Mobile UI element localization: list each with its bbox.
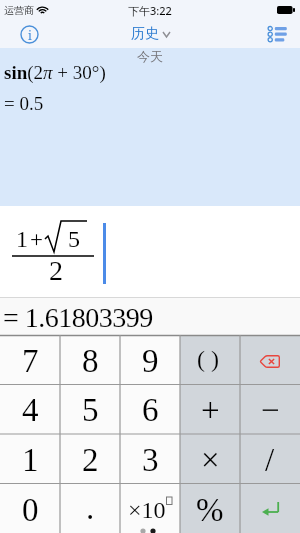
staticText: 5 — [82, 392, 99, 429]
staticText: 1 — [22, 442, 39, 479]
staticText: 运营商 — [4, 4, 34, 17]
staticText: / — [265, 442, 275, 479]
staticText: 2 — [82, 442, 99, 479]
button[interactable]: / — [240, 433, 300, 483]
staticText: ( ) — [197, 346, 219, 373]
staticText: 2 — [49, 255, 63, 286]
staticText: + — [201, 392, 220, 429]
button[interactable]: i — [20, 25, 39, 44]
staticText: ×10 — [128, 497, 166, 524]
staticText: 下午3:22 — [128, 3, 172, 18]
staticText: + — [30, 227, 43, 252]
button[interactable] — [267, 26, 287, 42]
button[interactable] — [240, 483, 300, 533]
button[interactable]: ×10 — [120, 483, 180, 533]
button[interactable]: . — [60, 483, 120, 533]
button[interactable]: sin(2π + 30°) — [4, 62, 106, 114]
staticText: = 1.61803399 — [3, 302, 153, 333]
staticText: 8 — [82, 343, 99, 380]
staticText: 0 — [22, 492, 39, 529]
staticText: i — [28, 27, 32, 43]
button[interactable] — [240, 335, 300, 384]
staticText: 9 — [142, 343, 159, 380]
staticText: 1 — [16, 226, 28, 253]
button[interactable]: 8 — [60, 335, 120, 384]
button[interactable]: 4 — [0, 384, 60, 433]
button[interactable]: 2 — [60, 433, 120, 483]
button[interactable]: − — [240, 384, 300, 433]
staticText: 7 — [22, 343, 39, 380]
staticText: 4 — [22, 392, 39, 429]
staticText: 3 — [142, 442, 159, 479]
button[interactable]: × — [180, 433, 240, 483]
staticText: sin(2π + 30°) — [4, 62, 106, 83]
button[interactable]: + — [180, 384, 240, 433]
button[interactable]: 5 — [60, 384, 120, 433]
staticText: × — [201, 442, 220, 479]
staticText: 5 — [68, 226, 80, 253]
staticText: 6 — [142, 392, 159, 429]
staticText: % — [196, 492, 224, 529]
staticText: 今天 — [137, 48, 163, 64]
staticText: − — [261, 392, 280, 429]
button[interactable]: ( ) — [180, 335, 240, 384]
button[interactable]: 历史 — [131, 25, 170, 43]
button[interactable]: 7 — [0, 335, 60, 384]
staticText: 历史 — [131, 25, 159, 43]
button[interactable]: 1 — [0, 433, 60, 483]
button[interactable]: % — [180, 483, 240, 533]
button[interactable]: 6 — [120, 384, 180, 433]
staticText: = 0.5 — [4, 93, 44, 114]
button[interactable]: 0 — [0, 483, 60, 533]
button[interactable]: 9 — [120, 335, 180, 384]
button[interactable]: 3 — [120, 433, 180, 483]
staticText: . — [86, 490, 95, 527]
